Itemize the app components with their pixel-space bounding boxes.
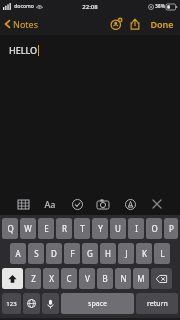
staticText: E [44,223,49,234]
button[interactable]: Next keyboard [23,293,40,314]
staticText: S [34,248,39,259]
button[interactable]: Notes [0,15,42,33]
staticText: V [85,273,90,284]
button[interactable]: Done [145,14,179,34]
button[interactable]: B [97,268,113,289]
staticText: U [115,223,121,234]
button[interactable]: Markup [121,195,139,213]
staticText: H [105,248,111,259]
button[interactable]: O [146,218,162,239]
button[interactable]: Dictate [42,293,59,314]
button[interactable]: 123 [2,293,21,314]
button[interactable]: C [61,268,77,289]
button[interactable]: A [10,243,26,264]
staticText: L [160,248,165,259]
button[interactable]: Format [41,195,59,213]
button[interactable]: Z [25,268,41,289]
staticText: P [169,223,174,234]
button[interactable]: I [128,218,144,239]
staticText: W [24,223,32,234]
staticText: return [147,299,168,309]
staticText: I [135,223,138,234]
staticText: Q [7,223,14,234]
staticText: X [49,273,54,284]
staticText: T [80,223,85,234]
staticText: Z [31,273,36,284]
button[interactable]: Share [125,14,145,34]
button[interactable]: space [61,293,134,314]
button[interactable]: P [164,218,178,239]
button[interactable]: L [154,243,170,264]
staticText: K [142,248,147,259]
staticText: Notes [13,18,38,30]
staticText: N [120,273,127,284]
staticText: HELLO [9,44,37,56]
button[interactable]: return [136,293,178,314]
button[interactable]: D [46,243,62,264]
staticText: O [151,223,158,234]
staticText: J [125,248,128,259]
button[interactable]: X [43,268,59,289]
button[interactable]: Camera [94,195,112,213]
button[interactable]: Close [148,195,166,213]
button[interactable]: Q [2,218,18,239]
button[interactable]: M [133,268,149,289]
button[interactable]: H [100,243,116,264]
button[interactable]: U [110,218,126,239]
staticText: 123 [6,300,17,308]
staticText: A [15,248,21,259]
staticText: M [137,273,145,284]
staticText: F [70,248,75,259]
button[interactable]: W [20,218,36,239]
button[interactable]: Delete [151,268,172,289]
staticText: docomo [14,3,34,10]
staticText: R [62,223,67,234]
staticText: Aa [44,198,56,210]
button[interactable]: G [82,243,98,264]
staticText: C [66,273,72,284]
button[interactable]: N [115,268,131,289]
button[interactable]: V [79,268,95,289]
button[interactable]: Shift [2,268,23,289]
button[interactable]: Checklist [68,195,86,213]
button[interactable]: Table [14,195,32,213]
button[interactable]: J [118,243,134,264]
staticText: 22:08 [82,3,98,11]
staticText: space [88,299,107,309]
staticText: D [51,248,57,259]
staticText: Done [150,18,174,30]
button[interactable]: F [64,243,80,264]
button[interactable]: Add People [105,14,125,34]
button[interactable]: E [38,218,54,239]
staticText: B [102,273,108,284]
button[interactable]: R [56,218,72,239]
button[interactable]: Y [92,218,108,239]
button[interactable]: K [136,243,152,264]
button[interactable]: T [74,218,90,239]
staticText: Y [98,223,103,234]
staticText: 38% [155,3,165,10]
staticText: G [87,248,93,259]
button[interactable]: S [28,243,44,264]
